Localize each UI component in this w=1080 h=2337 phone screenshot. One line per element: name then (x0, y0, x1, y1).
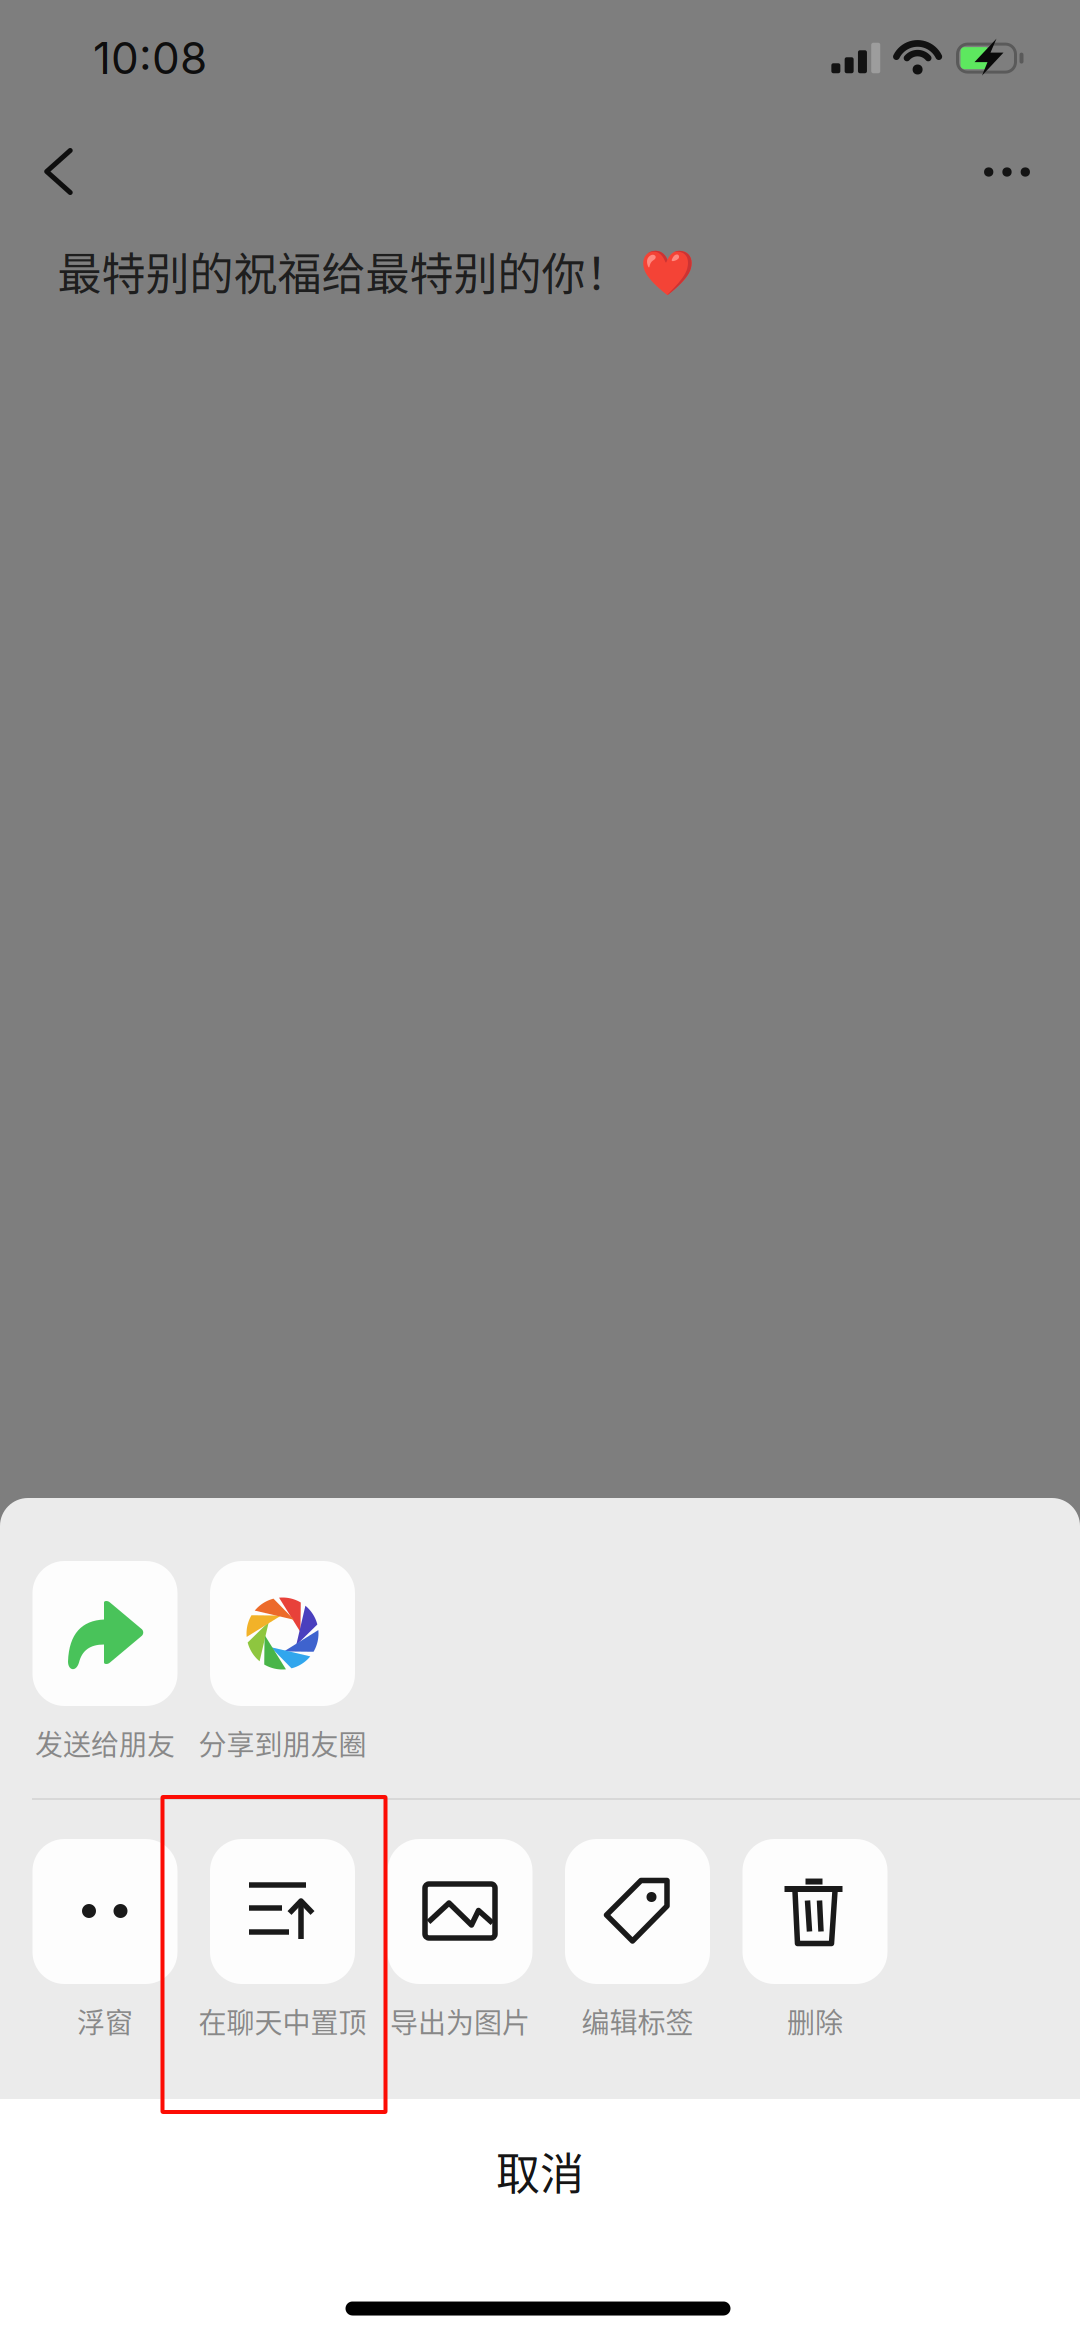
staticText: 发送给朋友 (35, 1723, 175, 1763)
button[interactable]: 删除 (742, 1839, 887, 2043)
staticText: 10:08 (93, 31, 207, 85)
staticText: 取消 (496, 2139, 584, 2203)
button[interactable]: 取消 (0, 2101, 1080, 2241)
button[interactable]: 浮窗 (32, 1839, 177, 2043)
button[interactable]: 编辑标签 (565, 1839, 710, 2043)
staticText: 删除 (787, 2001, 843, 2041)
staticText: 浮窗 (77, 2001, 133, 2041)
button[interactable]: 在聊天中置顶 (198, 1839, 366, 2043)
button[interactable]: Back (4, 117, 112, 225)
button[interactable]: 发送给朋友 (32, 1561, 177, 1765)
staticText: 分享到朋友圈 (198, 1723, 366, 1763)
staticText: 最特别的祝福给最特别的你！ ❤️ (57, 239, 694, 303)
button[interactable]: 导出为图片 (387, 1839, 532, 2043)
button[interactable]: 分享到朋友圈 (198, 1561, 366, 1765)
staticText: 导出为图片 (390, 2001, 530, 2041)
staticText: 编辑标签 (581, 2001, 693, 2041)
staticText: 在聊天中置顶 (198, 2001, 366, 2041)
button[interactable]: More (953, 118, 1061, 226)
